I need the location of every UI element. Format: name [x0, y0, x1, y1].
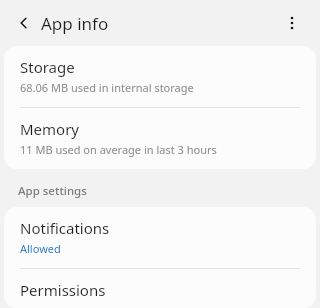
staticText: App info	[41, 12, 109, 35]
staticText: 68.06 MB used in internal storage	[20, 80, 194, 95]
staticText: Allowed	[20, 241, 61, 256]
staticText: 11 MB used on average in last 3 hours	[20, 142, 217, 157]
button[interactable]: Memory	[4, 108, 316, 169]
button[interactable]: Storage	[4, 46, 316, 107]
button[interactable]: Notifications	[4, 207, 316, 268]
staticText: App settings	[18, 183, 87, 199]
staticText: Storage	[20, 57, 75, 77]
staticText: Notifications	[20, 218, 110, 238]
staticText: Memory	[20, 119, 80, 139]
button[interactable]: Permissions	[4, 269, 316, 308]
staticText: Permissions	[20, 280, 106, 296]
button[interactable]: Back	[11, 10, 37, 36]
button[interactable]: More options	[278, 9, 306, 37]
